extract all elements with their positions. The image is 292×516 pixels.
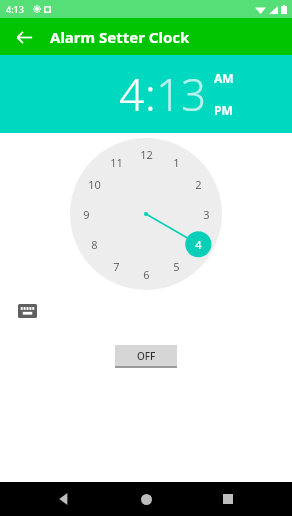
staticText: 12 — [140, 147, 153, 162]
staticText: 3 — [203, 207, 210, 222]
button[interactable]: AM — [214, 70, 234, 86]
staticText: 4 — [195, 237, 202, 252]
staticText: Alarm Setter Clock — [50, 27, 190, 47]
button[interactable]: OFF — [115, 345, 177, 366]
button[interactable]: 4 — [119, 64, 145, 124]
staticText: 6 — [143, 267, 150, 282]
button[interactable]: Clock hour picker — [70, 138, 222, 290]
button[interactable]: Home — [128, 482, 164, 516]
staticText: : — [145, 64, 156, 124]
staticText: OFF — [137, 349, 156, 363]
staticText: 8 — [91, 237, 98, 252]
button[interactable]: Recent apps — [210, 482, 246, 516]
staticText: 2 — [195, 177, 202, 192]
button[interactable]: Switch to keyboard input — [16, 300, 38, 322]
button[interactable]: Back — [46, 482, 82, 516]
staticText: 4:13 — [6, 3, 24, 15]
staticText: 9 — [83, 207, 90, 222]
staticText: 11 — [110, 155, 123, 170]
staticText: 7 — [113, 259, 120, 274]
button[interactable]: Back — [8, 21, 40, 53]
staticText: 5 — [173, 259, 180, 274]
button[interactable]: 13 — [156, 64, 207, 124]
staticText: 1 — [173, 155, 180, 170]
staticText: 10 — [88, 177, 101, 192]
button[interactable]: PM — [214, 102, 233, 118]
